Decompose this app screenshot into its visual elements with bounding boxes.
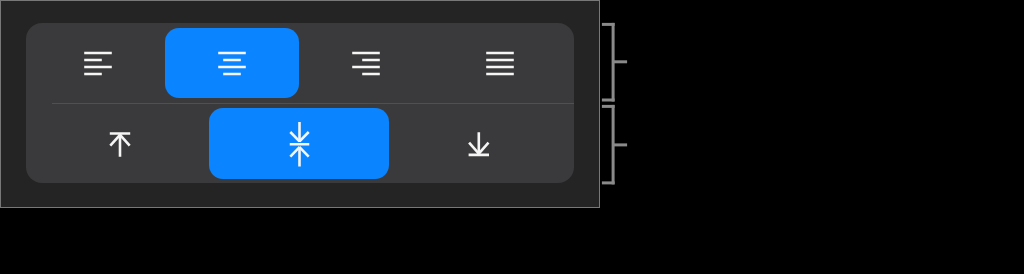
- button[interactable]: Align right: [299, 28, 433, 98]
- button[interactable]: Align middle: [209, 108, 389, 179]
- button[interactable]: Justify: [433, 28, 567, 98]
- button[interactable]: Align top: [30, 108, 209, 179]
- button[interactable]: Align left: [31, 28, 165, 98]
- button[interactable]: Align bottom: [389, 108, 569, 179]
- button[interactable]: Align center: [165, 28, 299, 98]
